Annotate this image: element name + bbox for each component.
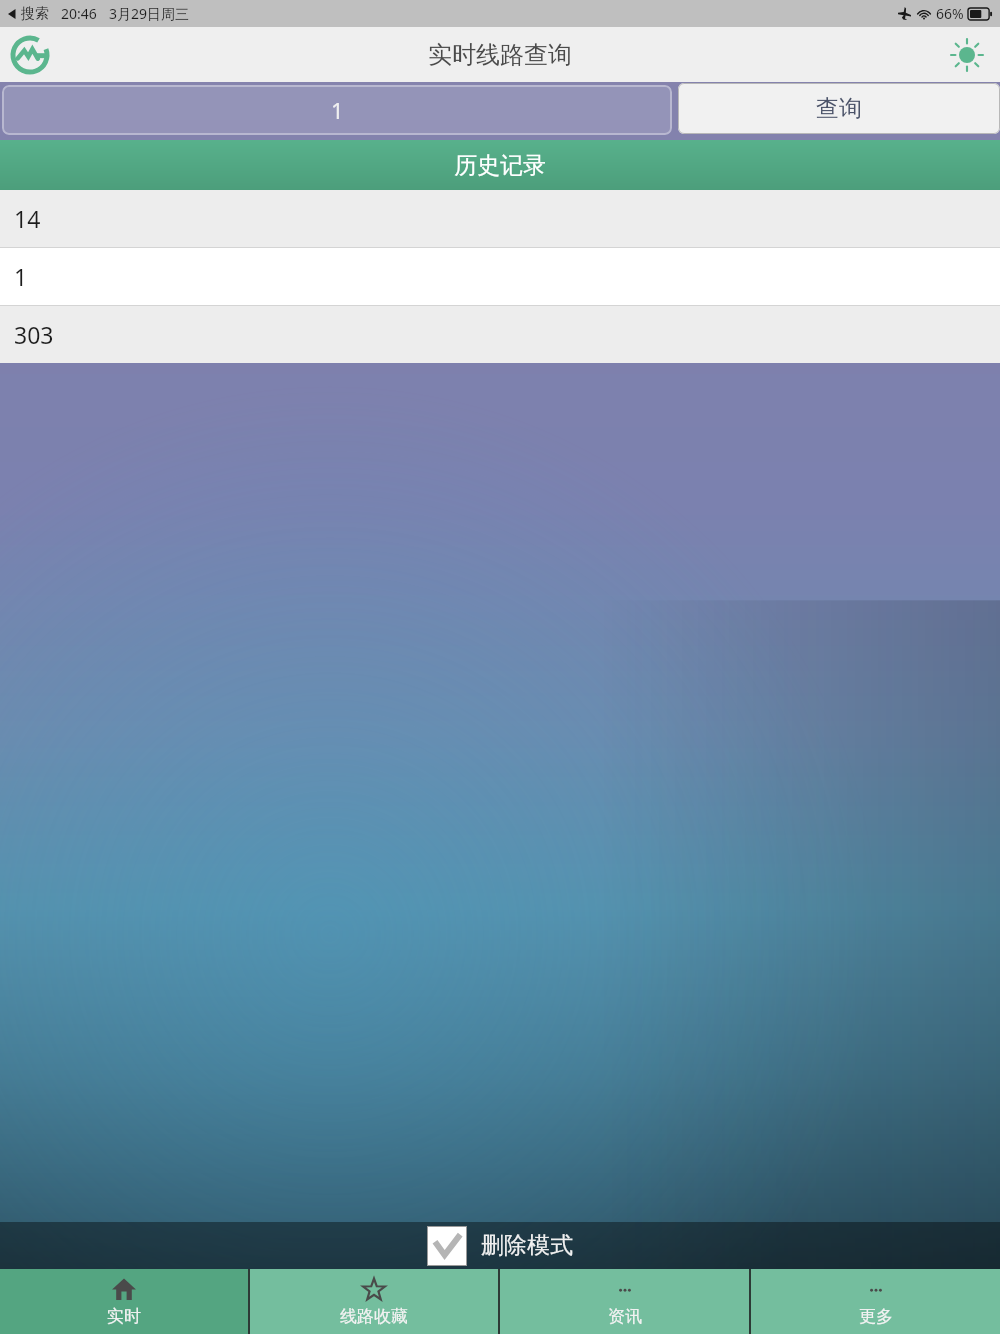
button[interactable]: 线路收藏 bbox=[250, 1269, 498, 1334]
button[interactable]: 303 bbox=[0, 306, 1000, 363]
button[interactable]: 实时 bbox=[0, 1269, 248, 1334]
button[interactable]: 1 bbox=[0, 248, 1000, 305]
button[interactable]: 14 bbox=[0, 190, 1000, 247]
staticText: 历史记录 bbox=[454, 151, 546, 180]
staticText: 14 bbox=[14, 203, 41, 234]
staticText: 3月29日周三 bbox=[109, 4, 190, 23]
staticText: 1 bbox=[331, 95, 344, 125]
staticText: 20:46 bbox=[61, 4, 97, 23]
staticText: 66% bbox=[936, 4, 964, 23]
button[interactable]: 1 bbox=[2, 85, 672, 135]
button[interactable]: 删除模式 bbox=[0, 1222, 1000, 1269]
staticText: 303 bbox=[14, 319, 54, 350]
staticText: 线路收藏 bbox=[340, 1306, 408, 1327]
staticText: 搜索 bbox=[21, 5, 49, 23]
staticText: 查询 bbox=[816, 94, 862, 123]
button[interactable]: 历史记录 bbox=[0, 140, 1000, 190]
button[interactable]: 更多 bbox=[751, 1269, 1000, 1334]
staticText: 实时 bbox=[107, 1306, 141, 1327]
staticText: 资讯 bbox=[608, 1306, 642, 1327]
button[interactable]: Brightness bbox=[944, 32, 990, 78]
button[interactable]: 资讯 bbox=[500, 1269, 749, 1334]
staticText: 实时线路查询 bbox=[428, 40, 572, 70]
button[interactable]: 查询 bbox=[678, 83, 1000, 134]
staticText: 更多 bbox=[859, 1306, 893, 1327]
staticText: 1 bbox=[14, 261, 28, 292]
button[interactable]: Logo bbox=[8, 33, 52, 77]
staticText: 删除模式 bbox=[481, 1231, 573, 1260]
